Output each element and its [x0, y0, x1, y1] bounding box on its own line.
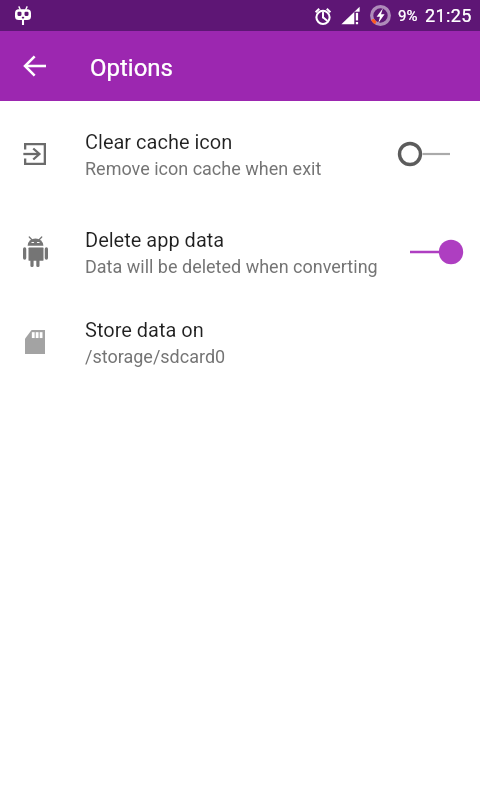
button[interactable]: Toggle on — [386, 232, 466, 272]
staticText: 21:25 — [425, 5, 472, 26]
staticText: Delete app data — [85, 228, 225, 251]
staticText: /storage/sdcard0 — [85, 346, 226, 367]
staticText: 9% — [398, 7, 418, 25]
staticText: Options — [90, 54, 174, 82]
button[interactable]: Navigate up — [11, 42, 59, 90]
staticText: Clear cache icon — [85, 130, 233, 153]
staticText: Data will be deleted when converting — [85, 256, 378, 277]
button[interactable]: Toggle off — [386, 134, 466, 174]
button[interactable]: Store data on — [0, 301, 480, 383]
staticText: Store data on — [85, 318, 204, 341]
button[interactable]: Clear cache icon — [0, 105, 480, 203]
staticText: Remove icon cache when exit — [85, 158, 322, 179]
button[interactable]: Delete app data — [0, 203, 480, 301]
